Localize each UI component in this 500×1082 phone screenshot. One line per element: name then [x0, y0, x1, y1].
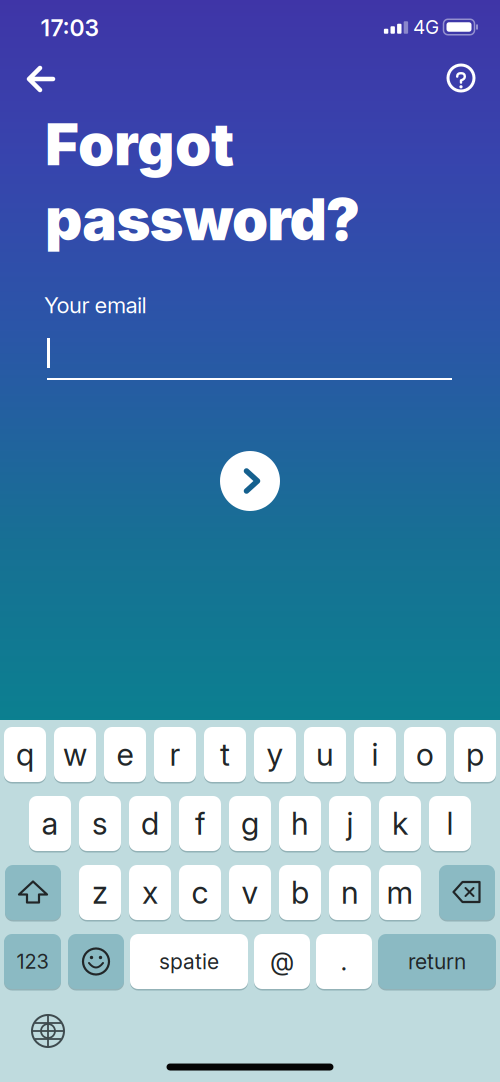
staticText: s: [92, 805, 108, 842]
staticText: .: [340, 946, 347, 977]
button[interactable]: t: [204, 727, 246, 782]
staticText: b: [291, 874, 309, 911]
button[interactable]: o: [404, 727, 446, 782]
staticText: e: [116, 736, 133, 773]
button[interactable]: [26, 66, 56, 92]
staticText: 123: [16, 949, 48, 974]
button[interactable]: i: [354, 727, 396, 782]
staticText: 4G: [413, 15, 439, 38]
staticText: g: [241, 805, 259, 842]
button[interactable]: g: [229, 796, 271, 851]
staticText: p: [466, 736, 484, 773]
button[interactable]: [47, 330, 452, 380]
staticText: q: [16, 736, 34, 773]
staticText: k: [392, 805, 408, 842]
button[interactable]: [68, 934, 124, 989]
staticText: m: [386, 874, 413, 911]
staticText: v: [241, 874, 258, 911]
button[interactable]: [439, 865, 495, 920]
button[interactable]: .: [316, 934, 372, 989]
button[interactable]: x: [129, 865, 171, 920]
staticText: n: [341, 874, 359, 911]
staticText: password?: [45, 184, 361, 254]
button[interactable]: q: [4, 727, 46, 782]
staticText: a: [41, 805, 58, 842]
staticText: j: [346, 805, 353, 842]
button[interactable]: p: [454, 727, 496, 782]
button[interactable]: e: [104, 727, 146, 782]
staticText: i: [371, 736, 378, 773]
button[interactable]: m: [379, 865, 421, 920]
staticText: u: [316, 736, 334, 773]
staticText: l: [446, 805, 453, 842]
button[interactable]: d: [129, 796, 171, 851]
staticText: y: [266, 736, 283, 773]
staticText: r: [169, 736, 180, 773]
button[interactable]: [220, 451, 280, 511]
button[interactable]: return: [378, 934, 496, 989]
staticText: spatie: [159, 949, 219, 974]
button[interactable]: r: [154, 727, 196, 782]
staticText: w: [63, 736, 87, 773]
staticText: x: [142, 874, 158, 911]
button[interactable]: c: [179, 865, 221, 920]
button[interactable]: b: [279, 865, 321, 920]
button[interactable]: n: [329, 865, 371, 920]
staticText: @: [270, 946, 294, 977]
staticText: t: [220, 736, 230, 773]
staticText: z: [92, 874, 108, 911]
staticText: f: [195, 805, 205, 842]
button[interactable]: l: [429, 796, 471, 851]
button[interactable]: f: [179, 796, 221, 851]
button[interactable]: s: [79, 796, 121, 851]
staticText: return: [408, 949, 466, 974]
button[interactable]: [446, 63, 476, 93]
button[interactable]: @: [254, 934, 310, 989]
button[interactable]: y: [254, 727, 296, 782]
button[interactable]: [5, 865, 61, 920]
staticText: Your email: [44, 292, 146, 319]
button[interactable]: v: [229, 865, 271, 920]
button[interactable]: [31, 1014, 65, 1048]
staticText: h: [291, 805, 309, 842]
button[interactable]: w: [54, 727, 96, 782]
button[interactable]: k: [379, 796, 421, 851]
staticText: d: [141, 805, 159, 842]
button[interactable]: j: [329, 796, 371, 851]
button[interactable]: a: [29, 796, 71, 851]
button[interactable]: spatie: [130, 934, 248, 989]
staticText: 17:03: [40, 14, 99, 42]
staticText: c: [191, 874, 208, 911]
button[interactable]: z: [79, 865, 121, 920]
button[interactable]: h: [279, 796, 321, 851]
staticText: Forgot: [45, 109, 234, 179]
button[interactable]: 123: [4, 934, 61, 989]
staticText: o: [416, 736, 434, 773]
button[interactable]: u: [304, 727, 346, 782]
